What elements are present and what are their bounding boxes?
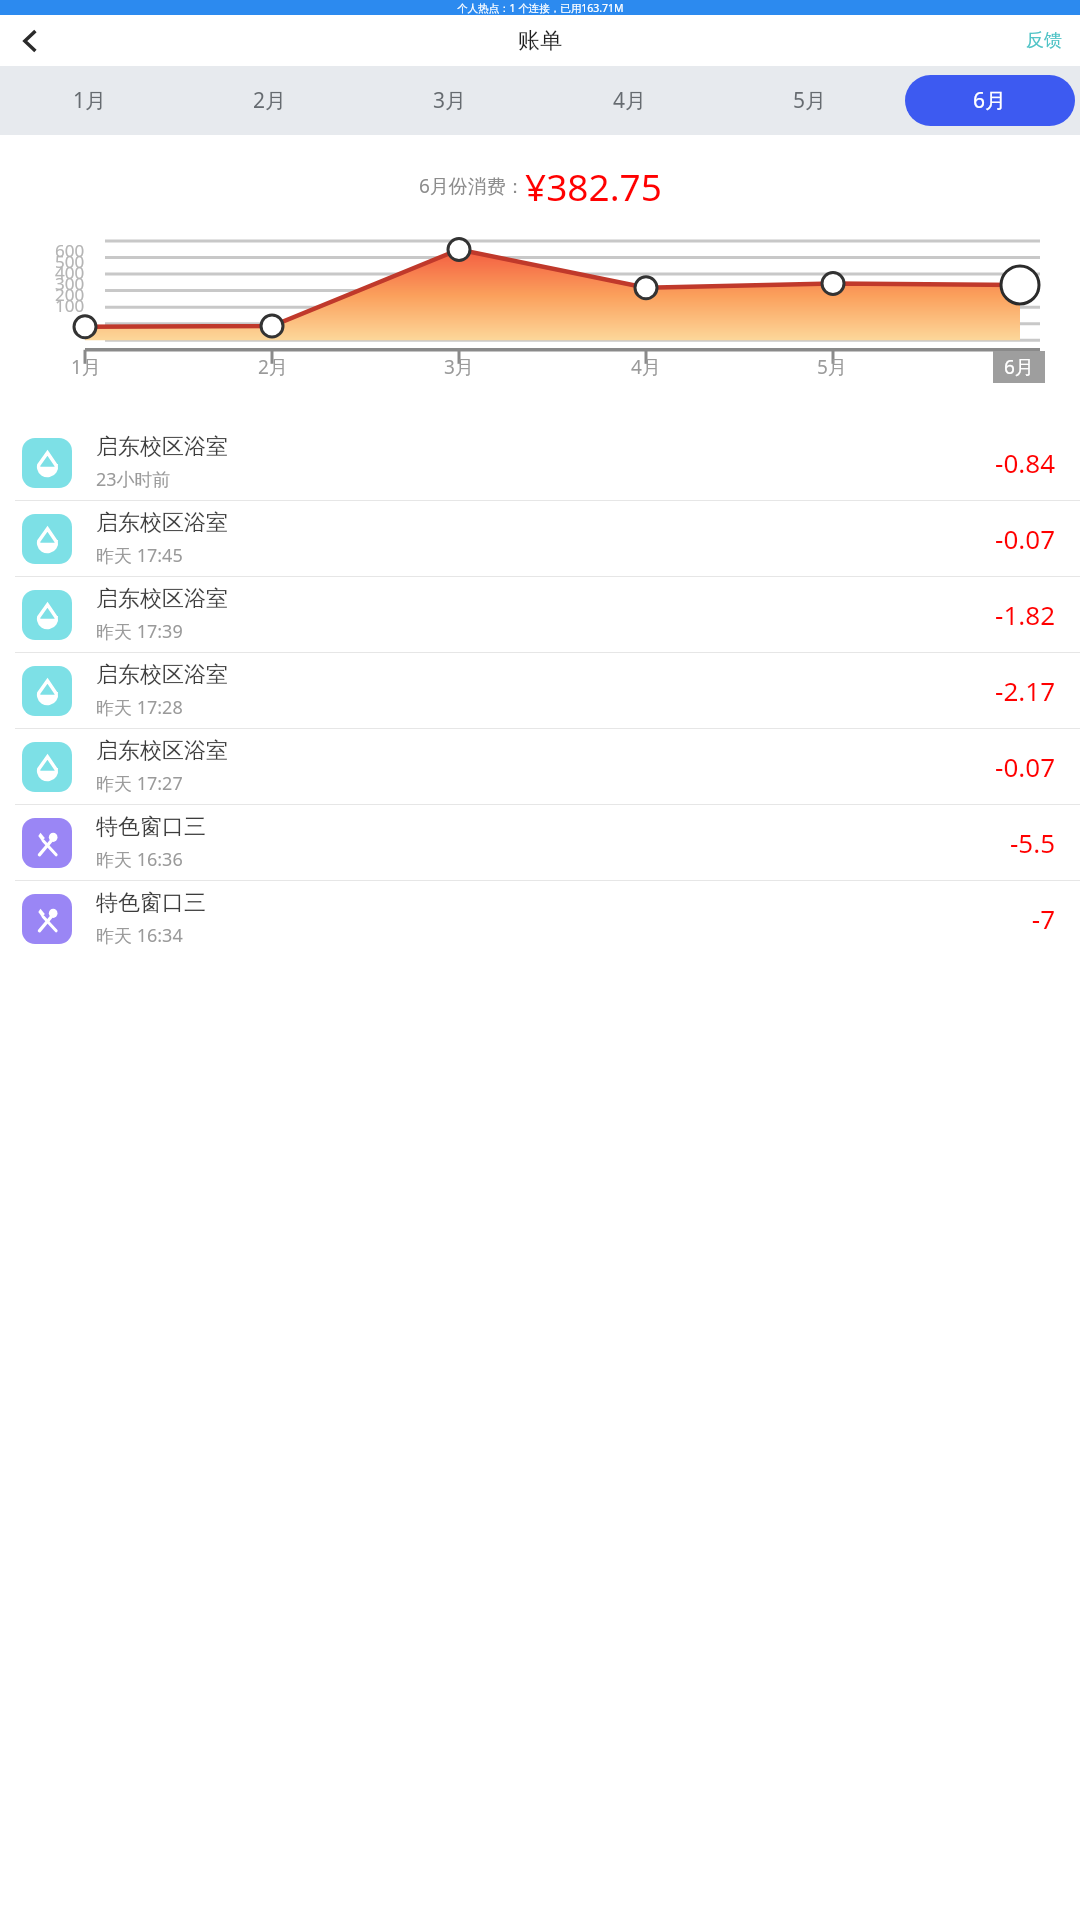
staticText: -0.07 [995, 521, 1055, 556]
staticText: 2月 [253, 86, 287, 115]
staticText: 400 [55, 261, 85, 284]
staticText: 5月 [817, 354, 847, 380]
button[interactable]: 1月 [5, 75, 175, 126]
button[interactable]: 特色窗口三 [0, 805, 1080, 880]
staticText: 昨天 17:28 [96, 695, 183, 720]
button[interactable]: 2月 [185, 75, 355, 126]
staticText: 昨天 17:39 [96, 619, 183, 644]
staticText: ¥382.75 [525, 161, 662, 211]
staticText: 600 [55, 239, 85, 262]
staticText: 6月 [973, 86, 1007, 115]
staticText: 昨天 17:45 [96, 543, 183, 568]
button[interactable]: 启东校区浴室 [0, 501, 1080, 576]
staticText: 23小时前 [96, 467, 171, 492]
staticText: 1月 [71, 354, 101, 380]
staticText: -5.5 [1009, 825, 1055, 860]
staticText: -7 [1031, 901, 1055, 936]
staticText: 300 [55, 272, 85, 295]
staticText: 昨天 17:27 [96, 771, 183, 796]
button[interactable]: 启东校区浴室 [0, 577, 1080, 652]
button[interactable]: 4月 [545, 75, 715, 126]
staticText: -2.17 [995, 673, 1055, 708]
staticText: 5月 [793, 86, 827, 115]
staticText: 启东校区浴室 [96, 509, 228, 537]
staticText: -1.82 [995, 597, 1055, 632]
staticText: 启东校区浴室 [96, 661, 228, 689]
button[interactable]: 启东校区浴室 [0, 653, 1080, 728]
staticText: 4月 [631, 354, 661, 380]
staticText: 1月 [73, 86, 107, 115]
staticText: 启东校区浴室 [96, 737, 228, 765]
staticText: 100 [55, 294, 85, 317]
staticText: 500 [55, 250, 85, 273]
staticText: 启东校区浴室 [96, 585, 228, 613]
staticText: 昨天 16:34 [96, 923, 183, 948]
staticText: 3月 [433, 86, 467, 115]
button[interactable]: 特色窗口三 [0, 881, 1080, 956]
staticText: 6月份消费： [419, 173, 525, 199]
staticText: 账单 [518, 27, 562, 55]
staticText: 特色窗口三 [96, 889, 206, 917]
staticText: 反馈 [1026, 29, 1062, 52]
staticText: 200 [55, 283, 85, 306]
staticText: -0.84 [995, 445, 1055, 480]
staticText: 昨天 16:36 [96, 847, 183, 872]
staticText: 启东校区浴室 [96, 433, 228, 461]
button[interactable]: 启东校区浴室 [0, 425, 1080, 500]
button[interactable]: 反馈 [1018, 21, 1070, 60]
staticText: 2月 [258, 354, 288, 380]
staticText: 特色窗口三 [96, 813, 206, 841]
button[interactable]: 3月 [365, 75, 535, 126]
staticText: 6月 [1004, 354, 1034, 380]
staticText: -0.07 [995, 749, 1055, 784]
button[interactable]: 启东校区浴室 [0, 729, 1080, 804]
staticText: 4月 [613, 86, 647, 115]
staticText: 3月 [444, 354, 474, 380]
button[interactable]: 6月 [905, 75, 1075, 126]
staticText: 个人热点：1 个连接，已用163.71M [457, 1, 624, 15]
button[interactable]: Back [6, 17, 54, 65]
button[interactable]: 5月 [725, 75, 895, 126]
